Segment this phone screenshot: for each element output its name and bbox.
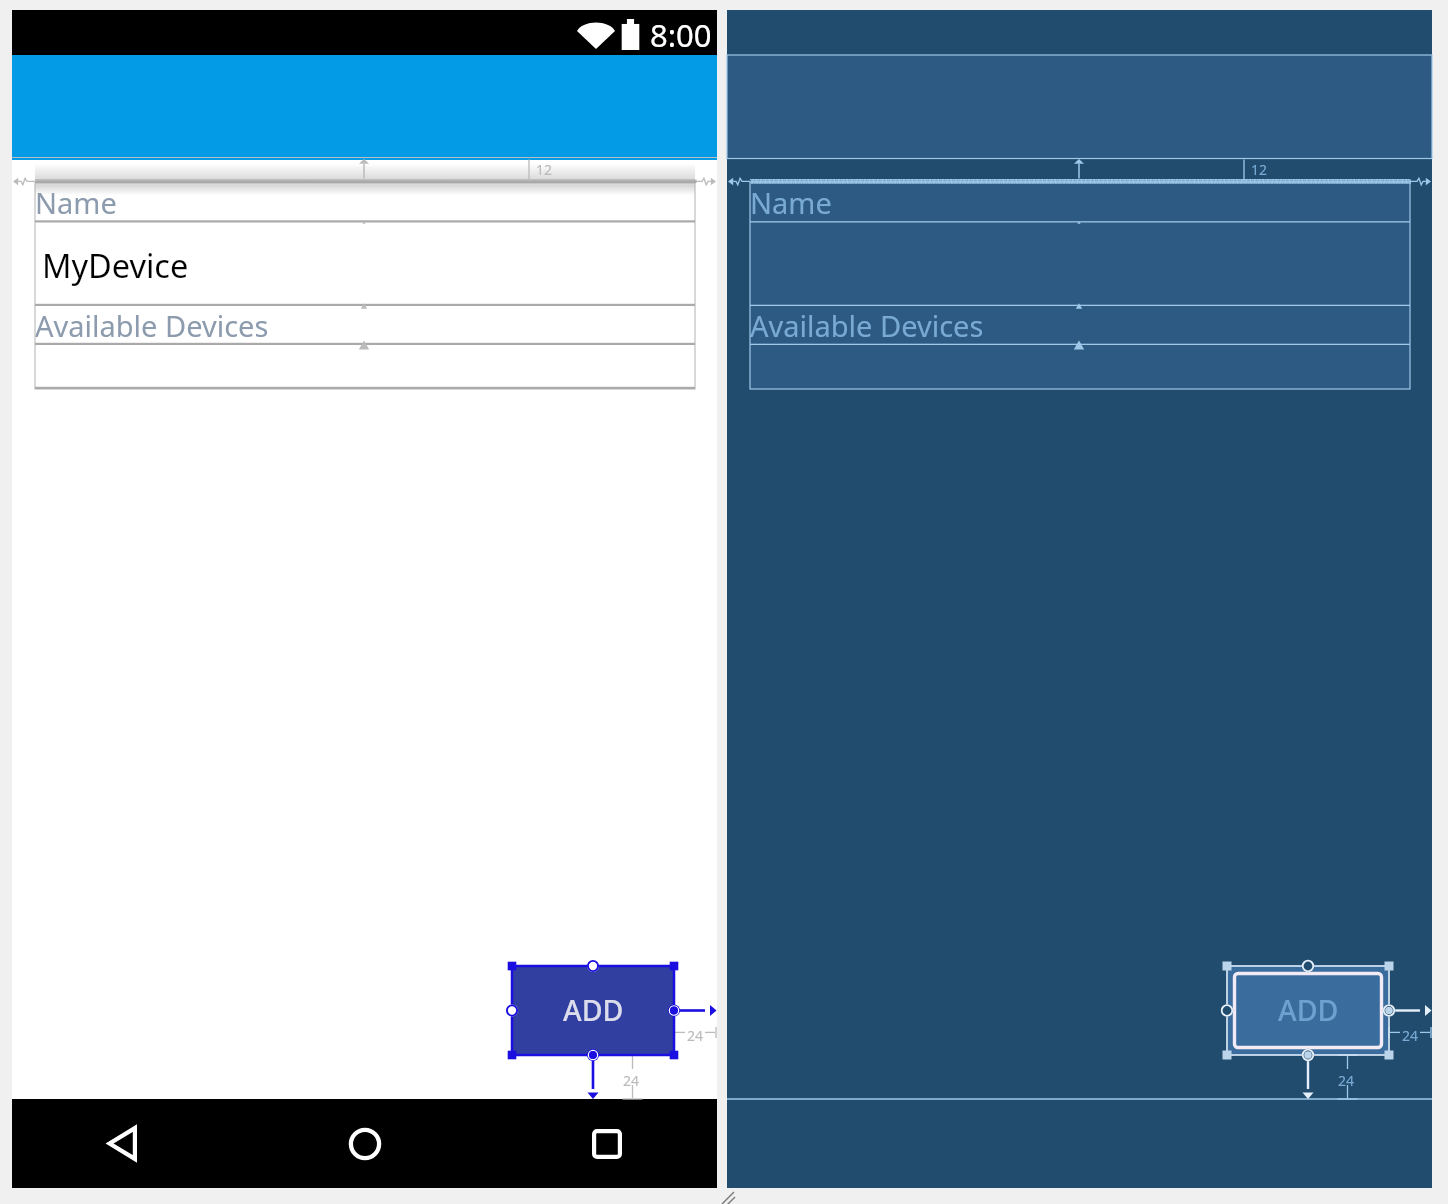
staticText: Name <box>35 183 117 222</box>
button[interactable] <box>750 345 1410 389</box>
staticText: 24 <box>623 1071 640 1090</box>
button[interactable]: Available Devices <box>750 306 1410 345</box>
button[interactable]: ADD <box>1227 966 1389 1055</box>
staticText: Available Devices <box>35 306 269 345</box>
button[interactable] <box>750 223 1410 307</box>
staticText: 24 <box>687 1026 704 1045</box>
staticText: 24 <box>1402 1026 1419 1045</box>
staticText: ADD <box>563 991 624 1030</box>
staticText: 12 <box>1251 160 1268 179</box>
staticText: Name <box>750 183 832 222</box>
button[interactable]: Available Devices <box>35 306 695 345</box>
button[interactable]: Back <box>78 1099 166 1188</box>
staticText: 24 <box>1338 1071 1355 1090</box>
button[interactable] <box>12 55 717 160</box>
button[interactable]: Recent apps <box>563 1099 651 1188</box>
staticText: 12 <box>536 160 553 179</box>
button[interactable] <box>35 345 695 389</box>
staticText: MyDevice <box>42 243 189 287</box>
staticText: 8:00 <box>650 14 712 56</box>
button[interactable]: Home <box>321 1099 409 1188</box>
button[interactable] <box>727 55 1432 159</box>
button[interactable]: Name <box>750 182 1410 223</box>
button[interactable]: ADD <box>512 966 674 1055</box>
button[interactable]: MyDevice <box>35 223 695 307</box>
button[interactable]: Name <box>35 182 695 223</box>
staticText: Available Devices <box>750 306 984 345</box>
staticText: ADD <box>1278 991 1339 1030</box>
